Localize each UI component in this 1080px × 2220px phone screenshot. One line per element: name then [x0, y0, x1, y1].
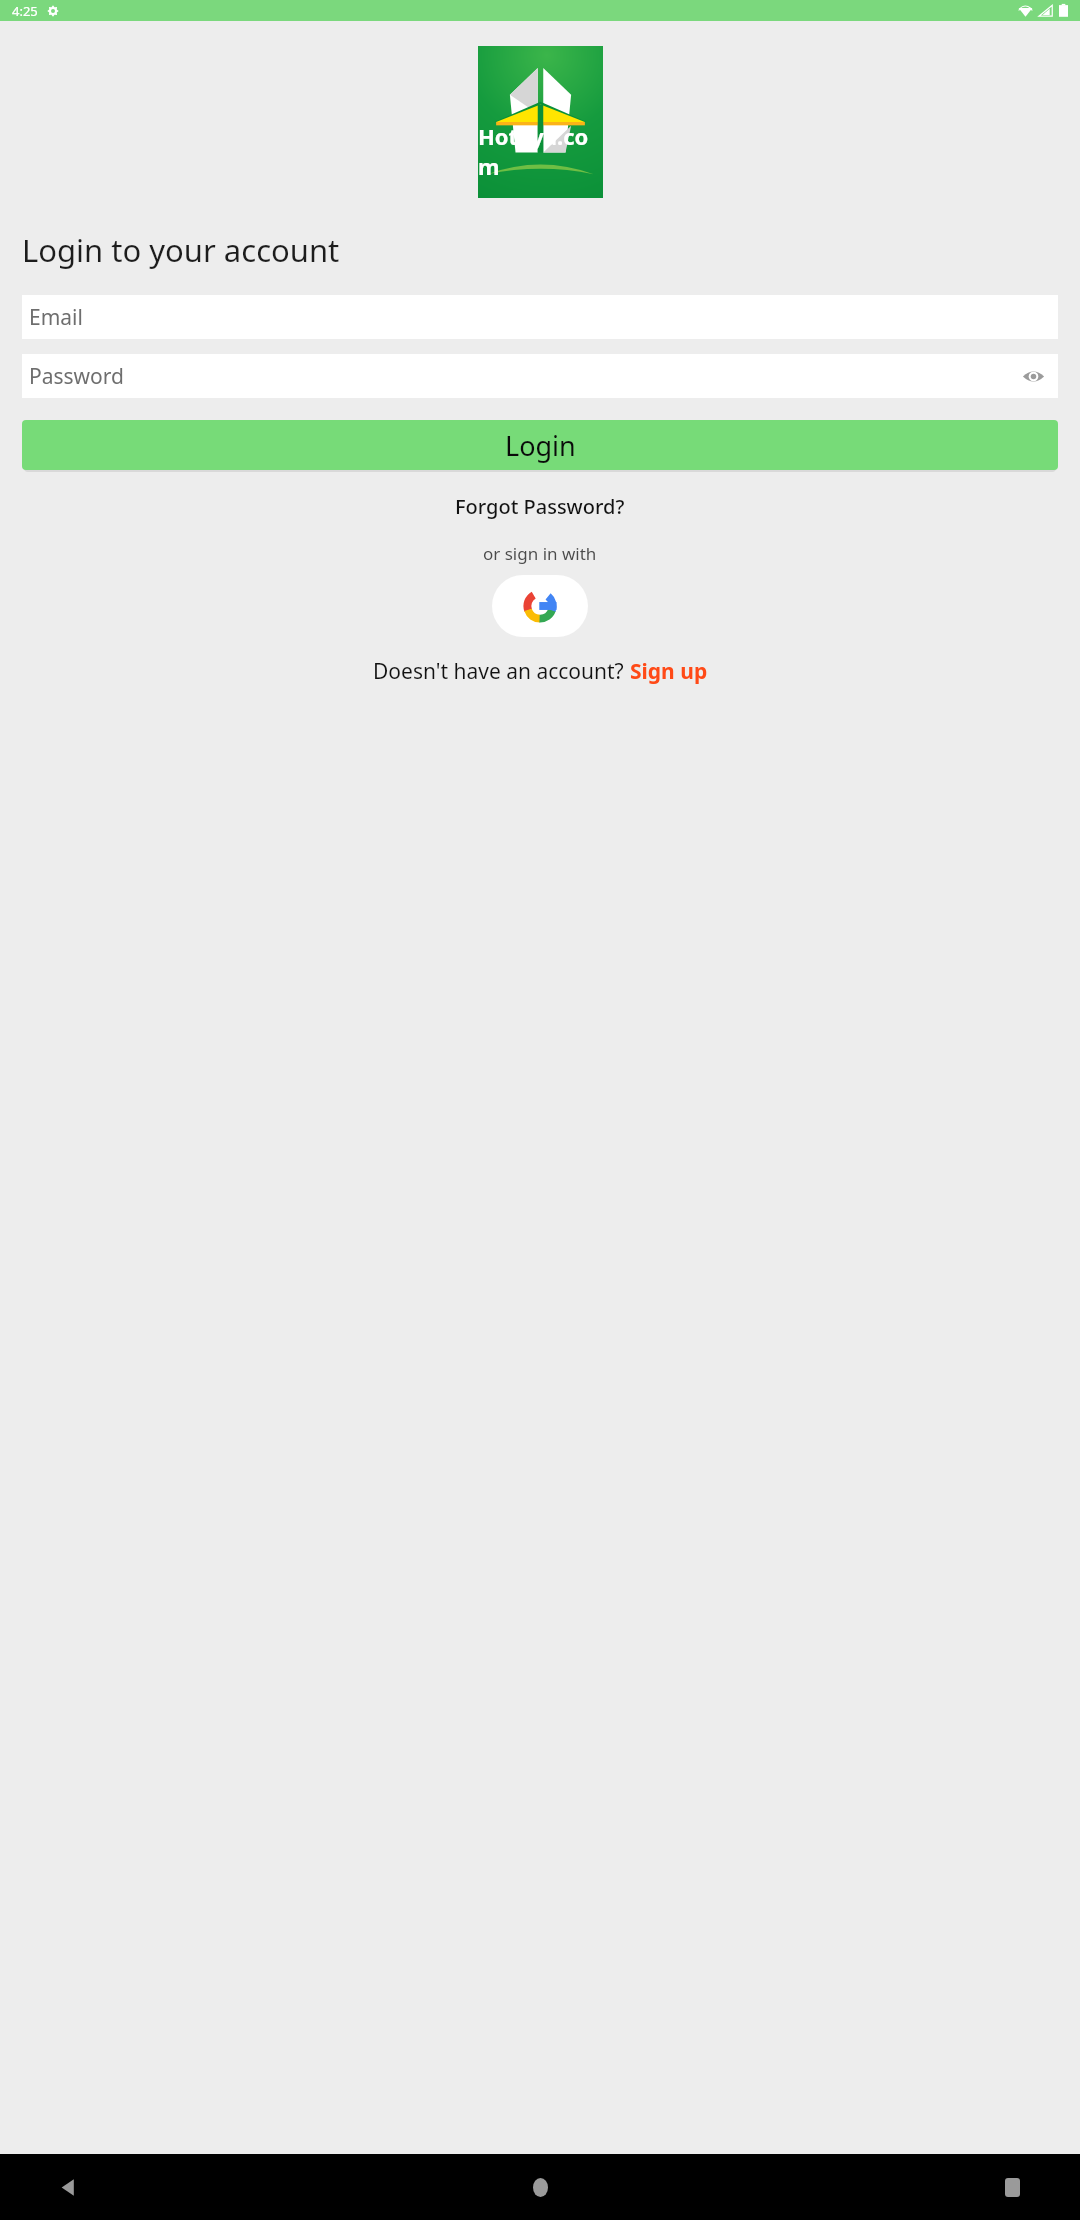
staticText: Doesn't have an account? — [373, 657, 630, 686]
button[interactable]: Email — [22, 295, 1058, 339]
staticText: Password — [29, 362, 124, 391]
button[interactable]: Recent apps — [984, 2159, 1040, 2215]
staticText: Email — [29, 303, 83, 332]
button[interactable]: Home — [512, 2159, 568, 2215]
staticText: 4:25 — [12, 2, 38, 20]
staticText: Hotaya.com — [478, 121, 603, 181]
staticText: Forgot Password? — [455, 493, 625, 520]
button[interactable]: Doesn't have an account? — [373, 657, 708, 686]
button[interactable]: Show password — [1018, 361, 1048, 391]
staticText: Login — [505, 427, 576, 464]
button[interactable]: Password — [22, 354, 1058, 398]
button[interactable]: Forgot Password? — [445, 489, 635, 524]
staticText: Login to your account — [22, 229, 340, 271]
staticText: Sign up — [630, 657, 708, 686]
button[interactable]: Back — [40, 2159, 96, 2215]
staticText: or sign in with — [483, 542, 597, 565]
button[interactable]: Login — [22, 420, 1058, 470]
button[interactable]: Sign in with Google — [492, 575, 588, 637]
